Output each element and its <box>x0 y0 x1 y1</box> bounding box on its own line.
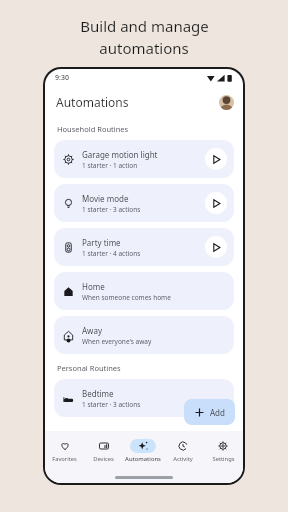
staticText: Devices <box>93 455 114 463</box>
staticText: 9:30 <box>55 73 69 83</box>
staticText: Favorites <box>52 455 77 463</box>
staticText: Party time <box>82 237 121 248</box>
staticText: Activity <box>173 455 193 463</box>
staticText: Build and manage <box>80 16 209 36</box>
button[interactable]: Run automation <box>205 192 227 214</box>
staticText: 1 starter · 3 actions <box>82 205 141 214</box>
button[interactable]: Movie mode <box>54 184 234 222</box>
button[interactable]: Settings <box>203 431 243 471</box>
button[interactable]: Activity <box>163 431 203 471</box>
staticText: Household Routines <box>57 124 129 134</box>
button[interactable]: Away <box>54 316 234 354</box>
button[interactable]: Favorites <box>45 431 84 471</box>
staticText: automations <box>99 38 189 58</box>
staticText: Personal Routines <box>57 363 121 373</box>
staticText: When everyone's away <box>82 337 152 346</box>
button[interactable]: Home <box>54 272 234 310</box>
staticText: Home <box>82 281 105 292</box>
button[interactable]: Account <box>219 95 234 110</box>
staticText: 1 starter · 3 actions <box>82 400 141 409</box>
staticText: 1 starter · 4 actions <box>82 249 141 258</box>
staticText: 1 starter · 1 action <box>82 161 138 170</box>
staticText: Automations <box>56 94 129 110</box>
button[interactable]: Run automation <box>205 148 227 170</box>
button[interactable]: Automations <box>123 431 163 471</box>
staticText: Garage motion light <box>82 149 158 160</box>
button[interactable]: Run automation <box>205 236 227 258</box>
staticText: Away <box>82 325 102 336</box>
button[interactable]: Add <box>184 399 235 425</box>
button[interactable]: Party time <box>54 228 234 266</box>
staticText: Movie mode <box>82 193 129 204</box>
staticText: Settings <box>212 455 235 463</box>
staticText: Bedtime <box>82 388 114 399</box>
button[interactable]: Devices <box>84 431 123 471</box>
button[interactable]: Bedtime <box>54 379 234 417</box>
button[interactable]: Garage motion light <box>54 140 234 178</box>
staticText: Automations <box>125 455 161 463</box>
staticText: Add <box>210 407 225 418</box>
staticText: When someone comes home <box>82 293 171 302</box>
